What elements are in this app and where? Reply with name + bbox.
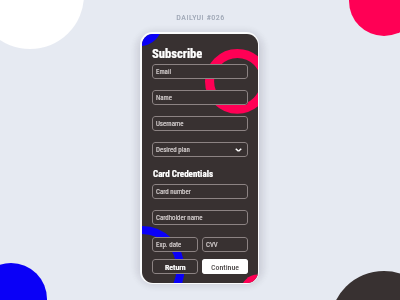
staticText: Return	[165, 263, 186, 272]
button[interactable]: Continue	[202, 259, 248, 274]
button[interactable]: Username	[152, 116, 248, 131]
staticText: Subscribe	[152, 46, 203, 61]
staticText: Username	[156, 120, 184, 128]
button[interactable]: Email	[152, 64, 248, 79]
button[interactable]: Card number	[152, 184, 248, 199]
staticText: DAILYUI #026	[176, 13, 225, 22]
staticText: Exp. date	[156, 241, 182, 249]
button[interactable]: Name	[152, 90, 248, 105]
staticText: Continue	[211, 263, 240, 272]
staticText: Name	[156, 94, 172, 102]
staticText: CVV	[206, 241, 218, 249]
button[interactable]: Exp. date	[152, 237, 198, 252]
button[interactable]: CVV	[202, 237, 248, 252]
other: Open plan menu	[235, 148, 242, 152]
button[interactable]: Desired plan	[152, 142, 248, 157]
button[interactable]: Cardholder name	[152, 210, 248, 225]
staticText: Card Credentials	[153, 169, 213, 180]
staticText: Desired plan	[156, 146, 190, 154]
button[interactable]: Return	[152, 259, 198, 274]
staticText: Cardholder name	[156, 214, 203, 222]
staticText: Card number	[156, 188, 191, 196]
staticText: Email	[156, 68, 172, 76]
